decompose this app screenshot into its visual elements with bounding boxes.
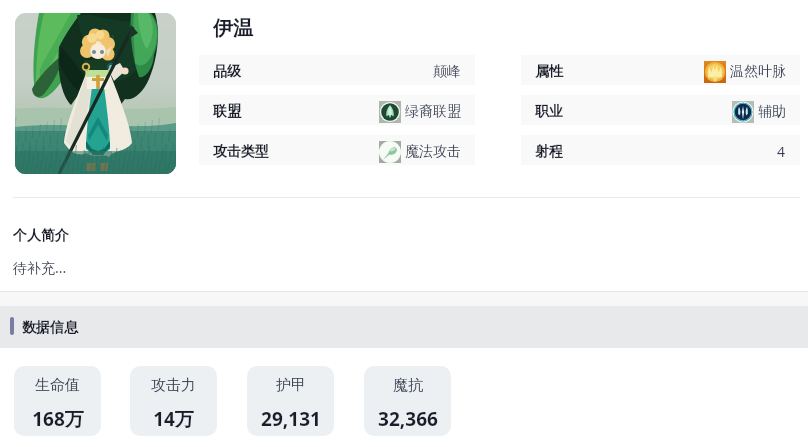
staticText: 颠峰: [433, 63, 461, 81]
staticText: 职业: [535, 103, 563, 121]
staticText: 个人简介: [13, 227, 69, 245]
staticText: 14万: [153, 406, 194, 432]
staticText: 29,131: [261, 406, 321, 432]
staticText: 魔法攻击: [405, 143, 461, 161]
staticText: 32,366: [378, 406, 438, 432]
button[interactable]: 品级: [199, 55, 475, 85]
staticText: 属性: [535, 63, 563, 81]
button[interactable]: 属性: [521, 55, 800, 85]
staticText: 品级: [213, 63, 241, 81]
staticText: 温然叶脉: [730, 63, 786, 81]
staticText: 4: [777, 142, 786, 161]
staticText: 魔抗: [393, 376, 423, 395]
button[interactable]: 联盟: [199, 95, 475, 125]
staticText: 护甲: [276, 376, 306, 395]
staticText: 168万: [32, 406, 84, 432]
button[interactable]: 魔抗: [364, 366, 451, 436]
button[interactable]: 职业: [521, 95, 800, 125]
staticText: 射程: [535, 143, 563, 161]
button[interactable]: 攻击类型: [199, 135, 475, 165]
button[interactable]: 护甲: [247, 366, 334, 436]
staticText: 攻击力: [151, 376, 196, 395]
button[interactable]: 攻击力: [130, 366, 217, 436]
staticText: 待补充...: [13, 258, 67, 277]
button[interactable]: 射程: [521, 135, 800, 165]
button[interactable]: 生命值: [14, 366, 101, 436]
staticText: 生命值: [35, 376, 80, 395]
staticText: 数据信息: [22, 319, 78, 337]
staticText: 辅助: [758, 103, 786, 121]
button[interactable]: Character portrait: [15, 13, 176, 174]
staticText: 联盟: [213, 103, 241, 121]
staticText: 伊温: [213, 16, 253, 41]
staticText: 攻击类型: [213, 143, 269, 161]
staticText: 绿裔联盟: [405, 103, 461, 121]
